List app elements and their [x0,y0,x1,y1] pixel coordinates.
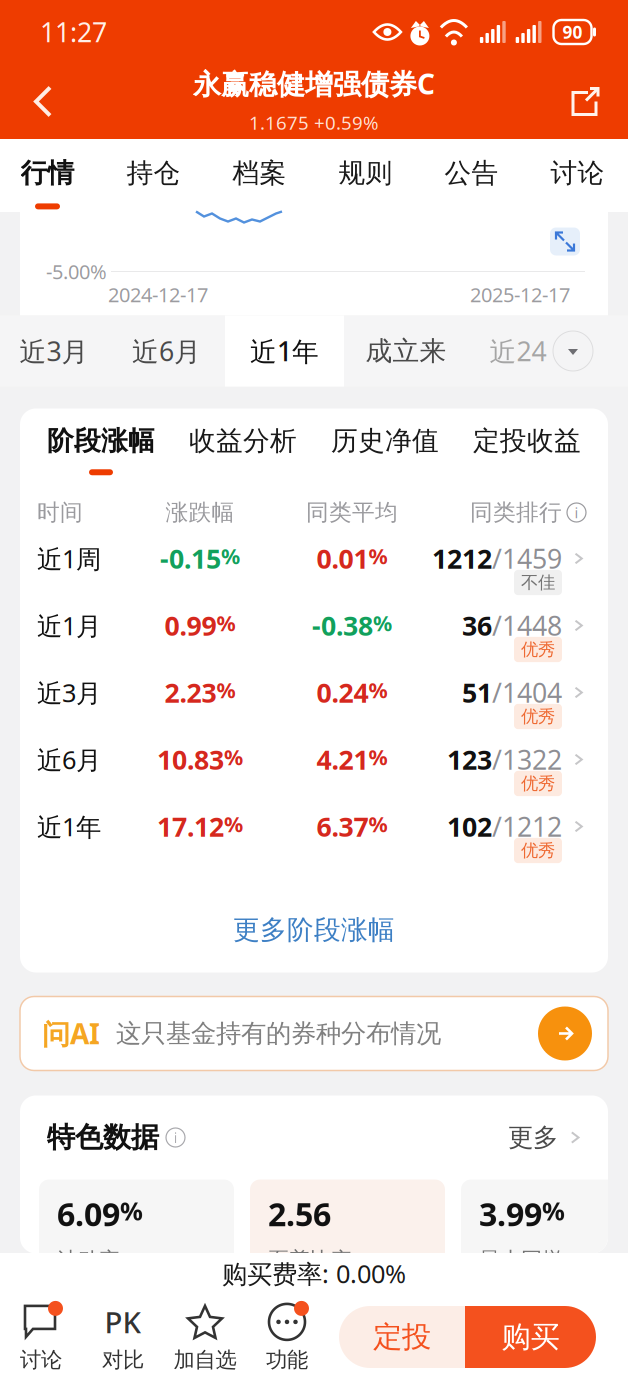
button[interactable]: 近3月 [0,315,108,386]
button[interactable]: 近24 [468,315,568,386]
staticText: 行情 [20,157,74,189]
button[interactable]: 近1年 [20,797,608,864]
staticText: 3.99 [479,1192,542,1235]
staticText: 优秀 [521,639,555,660]
button[interactable]: 近1周 [20,529,608,596]
staticText: 讨论 [20,1347,62,1373]
staticText: % [542,1194,565,1227]
staticText: % [368,743,387,771]
staticText: -0.15 [160,541,221,576]
staticText: 1212 [432,541,492,576]
staticText: % [224,810,243,838]
staticText: % [368,542,387,570]
staticText: % [216,676,235,704]
staticText: 波动率 [57,1247,120,1273]
button[interactable]: 阶段涨幅 [47,408,155,495]
button[interactable]: 定投收益 [473,408,581,495]
staticText: 近6月 [132,333,201,369]
staticText: % [224,743,243,771]
staticText: 更多 [508,1122,558,1153]
staticText: 对比 [102,1347,144,1373]
button[interactable]: 问AI [0,996,628,1070]
staticText: PK [104,1302,141,1341]
staticText: /1212 [492,809,562,844]
staticText: 夏普比率 [268,1247,352,1273]
staticText: /1322 [492,742,562,777]
button[interactable]: Back [0,66,74,136]
staticText: 持仓 [126,157,180,189]
button[interactable]: 档案 [234,139,285,212]
staticText: 11:27 [40,14,107,50]
staticText: /1459 [492,541,562,576]
button[interactable]: 加自选 [164,1295,246,1379]
staticText: 涨跌幅 [165,499,234,526]
staticText: 近3月 [37,676,101,709]
staticText: 近24 [489,333,546,369]
staticText: 90 [562,20,582,43]
staticText: % [373,609,392,637]
staticText: 近3月 [19,333,88,369]
staticText: 1.1675 +0.59% [249,110,379,135]
staticText: 购买 [501,1319,559,1355]
button[interactable]: 定投 [339,1306,465,1368]
staticText: 近1周 [37,542,101,575]
button[interactable]: 功能 [246,1295,328,1379]
staticText: 0.99 [164,608,216,643]
button[interactable]: 历史净值 [331,408,439,495]
button[interactable]: 公告 [446,139,497,212]
staticText: 历史净值 [331,424,439,457]
staticText: 最大回撤 [479,1247,563,1273]
button[interactable]: 收益分析 [189,408,297,495]
staticText: 10.83 [157,742,224,777]
button[interactable]: 近1月 [20,596,608,663]
staticText: i [574,503,578,522]
staticText: 问AI [42,1015,100,1052]
button[interactable]: 近6月 [108,315,225,386]
staticText: 优秀 [521,706,555,727]
button[interactable]: 规则 [340,139,391,212]
staticText: 功能 [266,1347,308,1373]
staticText: 讨论 [550,157,604,189]
button[interactable]: 更多 [508,1117,583,1157]
staticText: 时间 [37,499,83,526]
staticText: 定投 [373,1319,431,1355]
staticText: 102 [447,809,492,844]
staticText: % [216,609,235,637]
staticText: 公告 [444,157,498,189]
button[interactable]: Share [552,66,628,136]
button[interactable]: 更多阶段涨幅 [20,864,608,972]
staticText: 这只基金持有的券种分布情况 [116,1018,441,1049]
staticText: /1404 [492,675,562,710]
staticText: 同类排行 [470,499,562,526]
staticText: % [221,542,240,570]
button[interactable]: 讨论 [0,1295,82,1379]
staticText: 收益分析 [189,424,297,457]
staticText: 更多阶段涨幅 [233,913,395,946]
staticText: 36 [462,608,492,643]
button[interactable]: 购买 [465,1306,596,1368]
staticText: 定投收益 [473,424,581,457]
staticText: 阶段涨幅 [47,424,155,457]
staticText: 0.01 [316,541,368,576]
button[interactable]: 讨论 [552,139,603,212]
staticText: % [368,676,387,704]
staticText: 0.24 [316,675,368,710]
staticText: 2.23 [164,675,216,710]
button[interactable]: 近6月 [20,730,608,797]
button[interactable]: More periods [553,315,593,386]
button[interactable]: PK [82,1295,164,1379]
staticText: 123 [447,742,492,777]
button[interactable]: 近3月 [20,663,608,730]
button[interactable]: 持仓 [128,139,179,212]
button[interactable]: 近1年 [225,315,344,386]
staticText: 不佳 [521,572,555,593]
staticText: 近6月 [37,743,101,776]
staticText: 51 [462,675,492,710]
staticText: 特色数据 [47,1120,159,1155]
staticText: i [173,1128,177,1147]
button[interactable]: 行情 [22,139,73,212]
button[interactable]: 成立来 [344,315,468,386]
staticText: 近1年 [250,333,319,369]
button[interactable]: Expand chart [550,227,580,255]
staticText: 购买费率: 0.00% [222,1257,406,1290]
